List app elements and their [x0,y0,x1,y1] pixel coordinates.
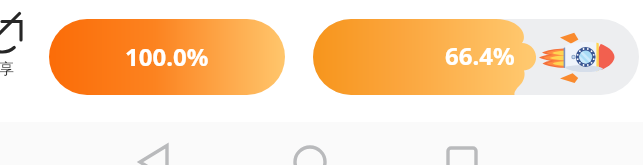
button[interactable]: 100.0% [49,19,285,95]
button[interactable]: Recents [445,122,479,165]
staticText: 66.4% [445,39,515,72]
staticText: 分享 [0,60,14,79]
staticText: 100.0% [125,40,209,73]
button[interactable]: Share [0,6,28,82]
button[interactable]: 66.4% [313,19,639,95]
button[interactable]: Back [137,122,171,165]
button[interactable]: Home [293,122,327,165]
